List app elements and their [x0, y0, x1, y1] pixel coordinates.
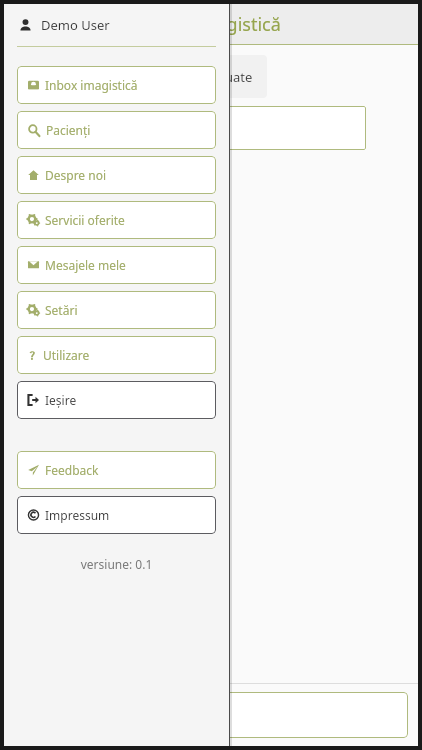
staticText: Servicii oferite [45, 212, 125, 228]
staticText: Utilizare [43, 347, 90, 363]
button[interactable]: Inbox imagistică [17, 66, 216, 104]
button[interactable]: Mesajele mele [17, 246, 216, 284]
staticText: Pacienți [46, 122, 91, 138]
button[interactable]: Servicii oferite [17, 201, 216, 239]
button[interactable]: Ieșire [17, 381, 216, 419]
staticText: Mesajele mele [45, 257, 126, 273]
staticText: Inbox imagistică [45, 77, 138, 93]
staticText: versiune: 0.1 [17, 556, 216, 572]
staticText: Feedback [45, 462, 99, 478]
button[interactable]: Despre noi [17, 156, 216, 194]
staticText: Setări [45, 302, 78, 318]
button[interactable]: Demo User [4, 4, 229, 46]
staticText: Nepreluate [184, 68, 253, 86]
staticText: Ieșire [45, 392, 77, 408]
button[interactable]: Utilizare [17, 336, 216, 374]
button[interactable]: Pacienți [17, 111, 216, 149]
button[interactable]: Nepreluate [170, 55, 267, 98]
staticText: Demo User [41, 16, 110, 34]
staticText: Impressum [45, 507, 110, 523]
staticText: Inbox imagistică [142, 12, 281, 37]
button[interactable]: Impressum [17, 496, 216, 534]
button[interactable]: Pacienți [154, 692, 408, 738]
button[interactable]: Setări [17, 291, 216, 329]
staticText: Despre noi [45, 167, 107, 183]
button[interactable]: Feedback [17, 451, 216, 489]
button[interactable] [154, 106, 366, 150]
